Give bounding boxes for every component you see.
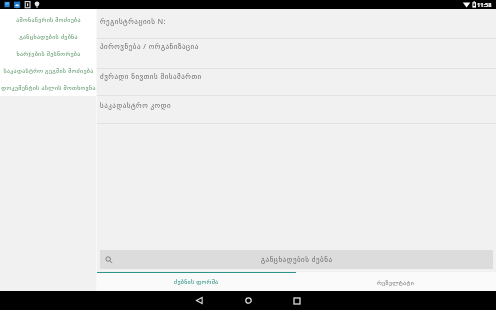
- button[interactable]: დოკუმენტის ასლის მოთხოვნა: [0, 79, 96, 96]
- staticText: საკადასტრო კოდი: [100, 101, 172, 111]
- button[interactable]: ძვრადი ნივთის მისამართი: [97, 69, 496, 96]
- other: Search: [105, 256, 113, 264]
- button[interactable]: რეზულტატი: [296, 273, 496, 291]
- button[interactable]: პიროვნება / ორგანიზაცია: [97, 39, 496, 69]
- staticText: დოკუმენტის ასლის მოთხოვნა: [1, 84, 96, 92]
- button[interactable]: Home: [238, 291, 258, 310]
- button[interactable]: განცხადების ძებნა: [0, 28, 96, 45]
- button[interactable]: Recents: [287, 291, 307, 310]
- staticText: საკადასტრო გეგმის მოძიება: [3, 67, 94, 75]
- button[interactable]: ხარჯების შესწორება: [0, 45, 96, 62]
- staticText: ამონაწერის მოძიება: [16, 16, 81, 24]
- staticText: განცხადების ძებნა: [19, 33, 78, 41]
- button[interactable]: განცხადების ძებნა: [100, 250, 493, 269]
- staticText: რეზულტატი: [377, 279, 415, 286]
- staticText: პიროვნება / ორგანიზაცია: [100, 42, 199, 52]
- staticText: რეგისტრაციის N:: [100, 17, 166, 27]
- staticText: ძვრადი ნივთის მისამართი: [100, 72, 202, 82]
- button[interactable]: რეგისტრაციის N:: [97, 9, 496, 39]
- staticText: ხარჯების შესწორება: [16, 50, 81, 58]
- staticText: 11:58: [477, 1, 492, 9]
- button[interactable]: Back: [189, 291, 209, 310]
- button[interactable]: საკადასტრო გეგმის მოძიება: [0, 62, 96, 79]
- other: Wi-Fi, battery: [0, 0, 496, 9]
- button[interactable]: ამონაწერის მოძიება: [0, 11, 96, 28]
- staticText: ძებნის ფორმა: [174, 278, 219, 286]
- staticText: განცხადების ძებნა: [261, 255, 333, 265]
- button[interactable]: ძებნის ფორმა: [97, 273, 296, 291]
- button[interactable]: საკადასტრო კოდი: [97, 96, 496, 124]
